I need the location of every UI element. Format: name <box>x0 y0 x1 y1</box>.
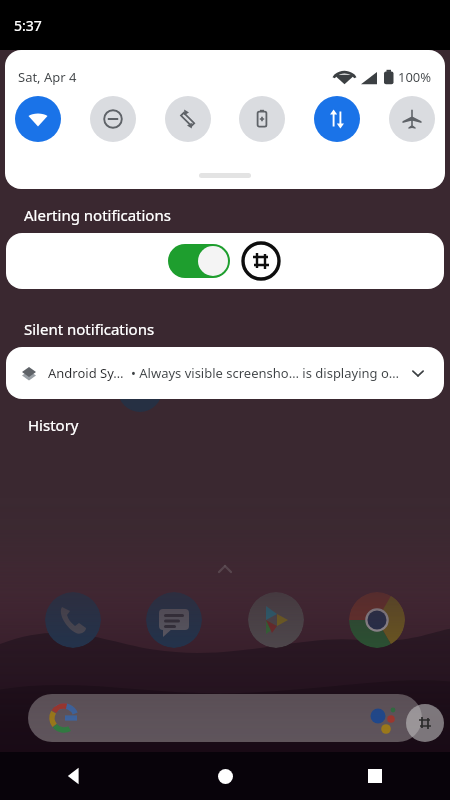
staticText: Alerting notifications <box>24 205 171 225</box>
button[interactable]: Toggle notification <box>6 233 444 289</box>
button[interactable]: Mobile data <box>314 96 360 142</box>
button[interactable]: Battery saver <box>239 96 285 142</box>
button[interactable]: Airplane mode <box>389 96 435 142</box>
button[interactable]: Wi-Fi <box>15 96 61 142</box>
staticText: History <box>28 415 79 435</box>
staticText: • Always visible screensho… is displayin… <box>131 364 400 382</box>
button[interactable]: Back <box>0 752 150 800</box>
button[interactable]: Auto-rotate <box>165 96 211 142</box>
button[interactable]: Search <box>28 694 422 742</box>
button[interactable]: Toggle notification <box>168 244 230 278</box>
button[interactable]: Do not disturb <box>90 96 136 142</box>
staticText: Android Sy… <box>48 364 124 382</box>
button[interactable]: Phone <box>45 592 101 648</box>
button[interactable]: Take screenshot <box>240 240 282 282</box>
button[interactable]: Play Store <box>248 592 304 648</box>
button[interactable]: Android Sy… <box>6 347 444 399</box>
staticText: 100% <box>398 68 432 86</box>
button[interactable]: Chrome <box>349 592 405 648</box>
button[interactable]: Recents <box>300 752 450 800</box>
button[interactable]: Expand <box>406 361 430 385</box>
button[interactable]: Home <box>150 752 300 800</box>
staticText: Silent notifications <box>24 319 155 339</box>
button[interactable]: Messages <box>146 592 202 648</box>
button[interactable]: History <box>22 411 85 439</box>
staticText: 5:37 <box>14 16 42 35</box>
button[interactable]: Screenshot <box>406 704 444 742</box>
staticText: Sat, Apr 4 <box>18 68 77 86</box>
